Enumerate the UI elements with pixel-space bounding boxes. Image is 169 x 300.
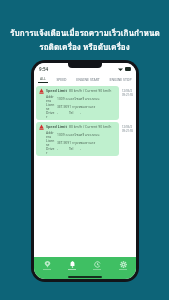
staticText: 9:54 [39,66,49,72]
button[interactable]: Alert [59,257,84,274]
button[interactable]: History [84,257,110,274]
button[interactable]: ALL [34,74,51,85]
staticText: ALL [40,76,46,81]
button[interactable]: ENGINE STOP [104,74,136,85]
staticText: Tel [69,146,74,150]
staticText: 1009 ถ.นครไชยศรี แขวงถนนนครไชยศรี... [57,96,116,101]
staticText: 09:21:55 [122,129,134,133]
button[interactable]: SPEED [51,74,72,85]
staticText: 09:21:55 [122,93,134,97]
staticText: Address [46,94,55,102]
staticText: 1009 ถ.นครไชยศรี แขวงถนนนครไชยศรี... [57,132,116,137]
button[interactable]: Settings [110,257,136,274]
staticText: 12/06/2 [122,89,133,93]
staticText: Address [46,130,55,138]
staticText: ENGINE STOP [109,77,132,82]
button[interactable]: Live [34,257,59,274]
staticText: Speed Limit [46,88,67,93]
staticText: Driver [46,146,55,154]
staticText: 3ET-9091 กรุงเทพมหานคร [57,140,96,145]
staticText: 80 km/h / Current 90 km/h [69,124,112,129]
staticText: License [46,138,55,146]
staticText: Speed Limit [46,124,67,129]
staticText: 3ET-9091 กรุงเทพมหานคร [57,104,96,109]
staticText: 12/06/2 [122,125,133,129]
button[interactable]: Speed Limit [36,122,134,156]
staticText: - [57,110,59,115]
staticText: License [46,102,55,110]
staticText: Tel [69,110,74,114]
staticText: 80 km/h / Current 90 km/h [69,88,112,93]
staticText: ENGINE START [76,77,100,82]
button[interactable]: Speed Limit [36,86,134,120]
button[interactable]: ENGINE START [72,74,104,85]
staticText: - [80,146,82,151]
staticText: รถติดเครื่อง หรือดับเครื่อง [39,41,130,54]
staticText: SPEED [56,77,67,82]
staticText: - [57,146,59,151]
staticText: Driver [46,110,55,118]
staticText: รับการแจ้งเตือนเมื่อรถความเร็วเกินกำหนด [10,27,160,40]
staticText: - [80,110,82,115]
